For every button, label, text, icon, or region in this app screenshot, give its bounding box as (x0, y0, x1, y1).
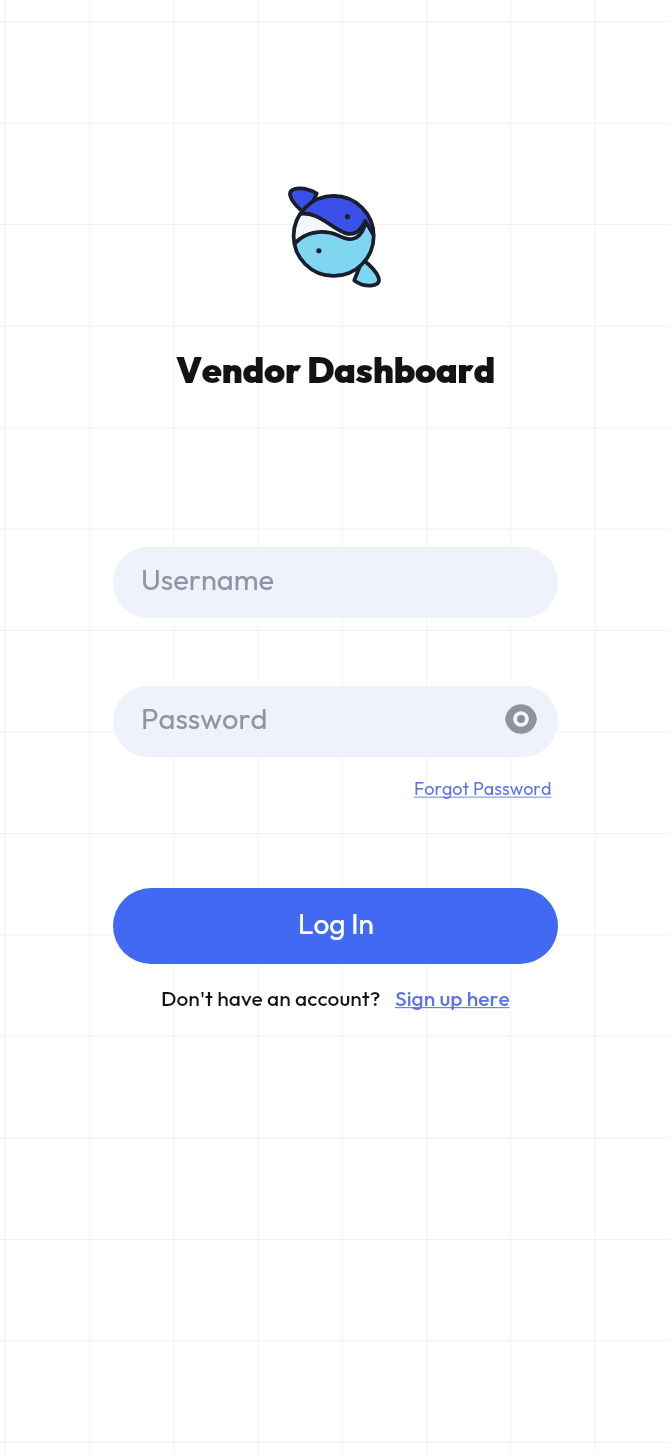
button[interactable]: Sign up here (395, 985, 510, 1011)
button[interactable]: Password (113, 686, 558, 757)
staticText: Don't have an account? (161, 985, 381, 1011)
staticText: Vendor Dashboard (176, 347, 495, 392)
button[interactable]: Log In (113, 888, 558, 964)
staticText: Forgot Password (414, 777, 552, 800)
staticText: Password (141, 700, 502, 737)
staticText: Username (141, 561, 274, 598)
button[interactable]: Forgot Password (414, 777, 552, 800)
staticText: Sign up here (395, 985, 510, 1011)
staticText: Log In (298, 906, 374, 941)
button[interactable]: Show password (502, 703, 540, 741)
button[interactable]: Username (113, 547, 558, 618)
